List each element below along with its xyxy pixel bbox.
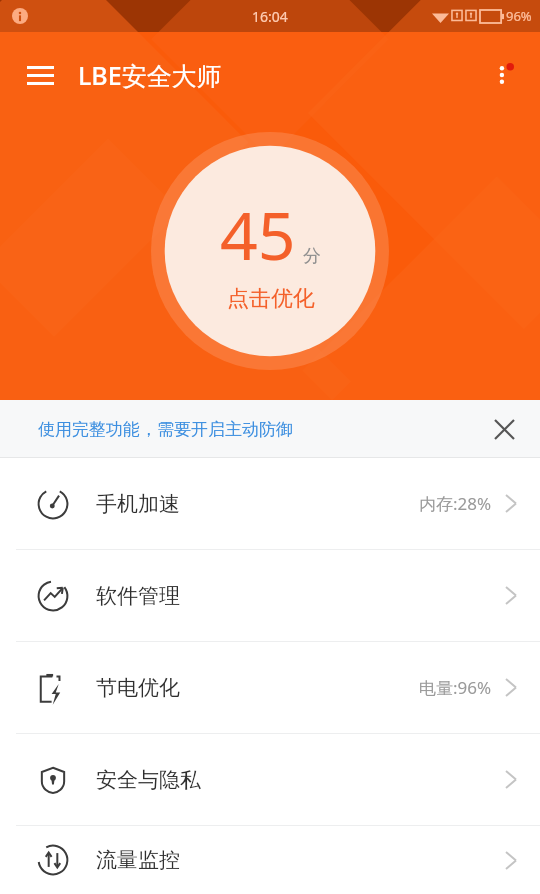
button[interactable]: 软件管理 xyxy=(0,550,540,641)
button[interactable]: 节电优化 xyxy=(0,642,540,733)
staticText: 内存:28% xyxy=(419,492,492,515)
button[interactable]: 流量监控 xyxy=(0,826,540,894)
staticText: 16:04 xyxy=(252,7,288,26)
staticText: 96% xyxy=(506,7,532,25)
staticText: 流量监控 xyxy=(96,847,180,873)
staticText: 使用完整功能，需要开启主动防御 xyxy=(38,419,293,440)
staticText: LBE安全大师 xyxy=(78,58,222,92)
button[interactable]: 手机加速 xyxy=(0,458,540,549)
staticText: 软件管理 xyxy=(96,583,180,609)
staticText: 手机加速 xyxy=(96,491,180,517)
staticText: 节电优化 xyxy=(96,675,180,701)
staticText: 电量:96% xyxy=(419,676,492,699)
button[interactable]: More options xyxy=(478,49,530,101)
button[interactable]: 使用完整功能，需要开启主动防御 xyxy=(0,400,540,458)
button[interactable]: Close xyxy=(482,407,526,451)
button[interactable]: Menu xyxy=(14,49,66,101)
button[interactable]: 点击优化 xyxy=(227,285,315,313)
staticText: 安全与隐私 xyxy=(96,767,201,793)
button[interactable]: 安全与隐私 xyxy=(0,734,540,825)
staticText: 分 xyxy=(303,245,321,268)
staticText: 45 xyxy=(220,189,296,279)
